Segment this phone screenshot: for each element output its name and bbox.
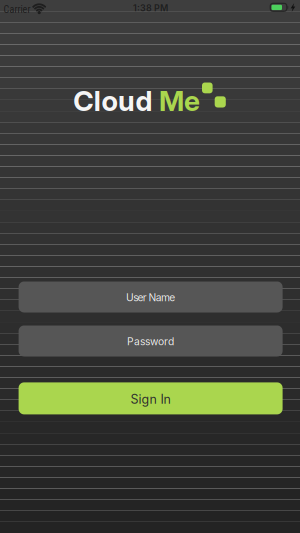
button[interactable]: Sign In [19, 382, 283, 414]
staticText: Carrier [3, 4, 30, 15]
button[interactable]: Password [19, 325, 283, 356]
staticText: Me [159, 84, 200, 118]
button[interactable]: User Name [19, 281, 283, 312]
staticText: Sign In [131, 392, 171, 407]
staticText: Password [127, 335, 174, 348]
staticText: Cloud [73, 84, 152, 118]
staticText: 1:38 PM [133, 3, 168, 13]
staticText: User Name [126, 291, 175, 304]
